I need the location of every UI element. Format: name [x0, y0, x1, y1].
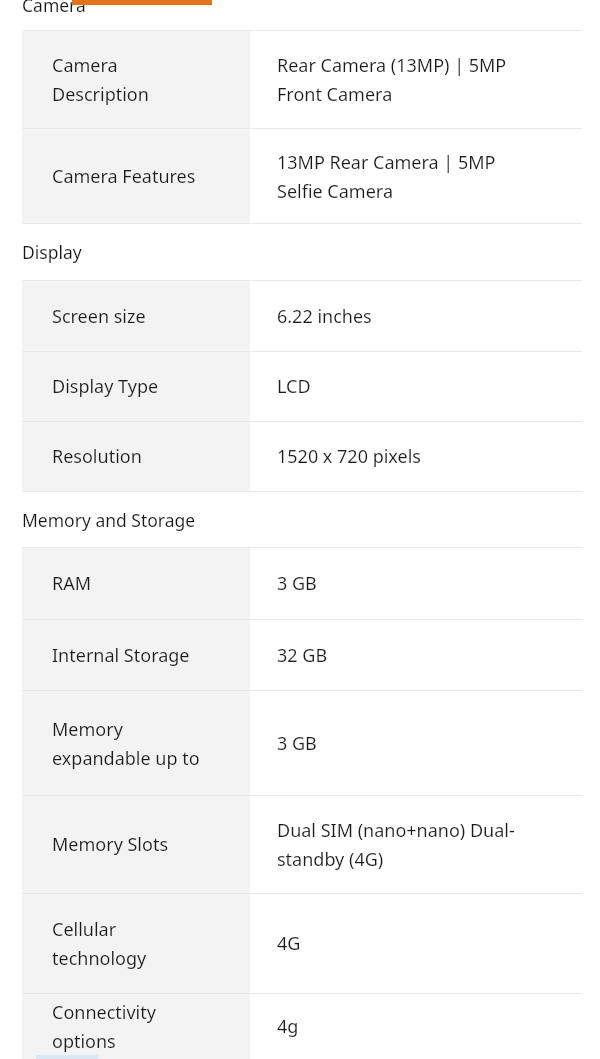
- staticText: 4g: [277, 1014, 299, 1039]
- staticText: Camera: [22, 0, 86, 17]
- staticText: Cellular technology: [52, 917, 147, 970]
- staticText: Dual SIM (nano+nano) Dual- standby (4G): [277, 818, 515, 871]
- staticText: Display: [22, 240, 82, 264]
- staticText: 3 GB: [277, 571, 317, 596]
- staticText: 3 GB: [277, 731, 317, 756]
- staticText: 4G: [277, 931, 301, 956]
- staticText: Camera Description: [52, 53, 149, 106]
- button[interactable]: Display Type: [0, 352, 600, 421]
- staticText: 32 GB: [277, 643, 328, 668]
- button[interactable]: Screen size: [0, 281, 600, 351]
- button[interactable]: Resolution: [0, 422, 600, 491]
- staticText: Resolution: [52, 444, 142, 469]
- button[interactable]: Cellular technology: [0, 894, 600, 993]
- staticText: 13MP Rear Camera | 5MP Selfie Camera: [277, 150, 496, 203]
- button[interactable]: Camera Features: [0, 129, 600, 223]
- staticText: Screen size: [52, 304, 146, 329]
- staticText: Rear Camera (13MP) | 5MP Front Camera: [277, 53, 507, 106]
- staticText: Memory and Storage: [22, 508, 196, 532]
- staticText: 1520 x 720 pixels: [277, 444, 421, 469]
- button[interactable]: Internal Storage: [0, 620, 600, 690]
- staticText: Camera Features: [52, 164, 196, 189]
- staticText: Connectivity options: [52, 1000, 156, 1053]
- button[interactable]: Memory Slots: [0, 796, 600, 893]
- button[interactable]: Connectivity options: [0, 994, 600, 1059]
- staticText: Memory expandable up to: [52, 717, 200, 770]
- staticText: Internal Storage: [52, 643, 190, 668]
- button[interactable]: RAM: [0, 548, 600, 619]
- staticText: 6.22 inches: [277, 304, 372, 329]
- button[interactable]: Camera Description: [0, 31, 600, 128]
- staticText: RAM: [52, 571, 92, 596]
- staticText: Display Type: [52, 374, 159, 399]
- button[interactable]: Memory expandable up to: [0, 691, 600, 795]
- staticText: Memory Slots: [52, 832, 169, 857]
- staticText: LCD: [277, 374, 311, 399]
